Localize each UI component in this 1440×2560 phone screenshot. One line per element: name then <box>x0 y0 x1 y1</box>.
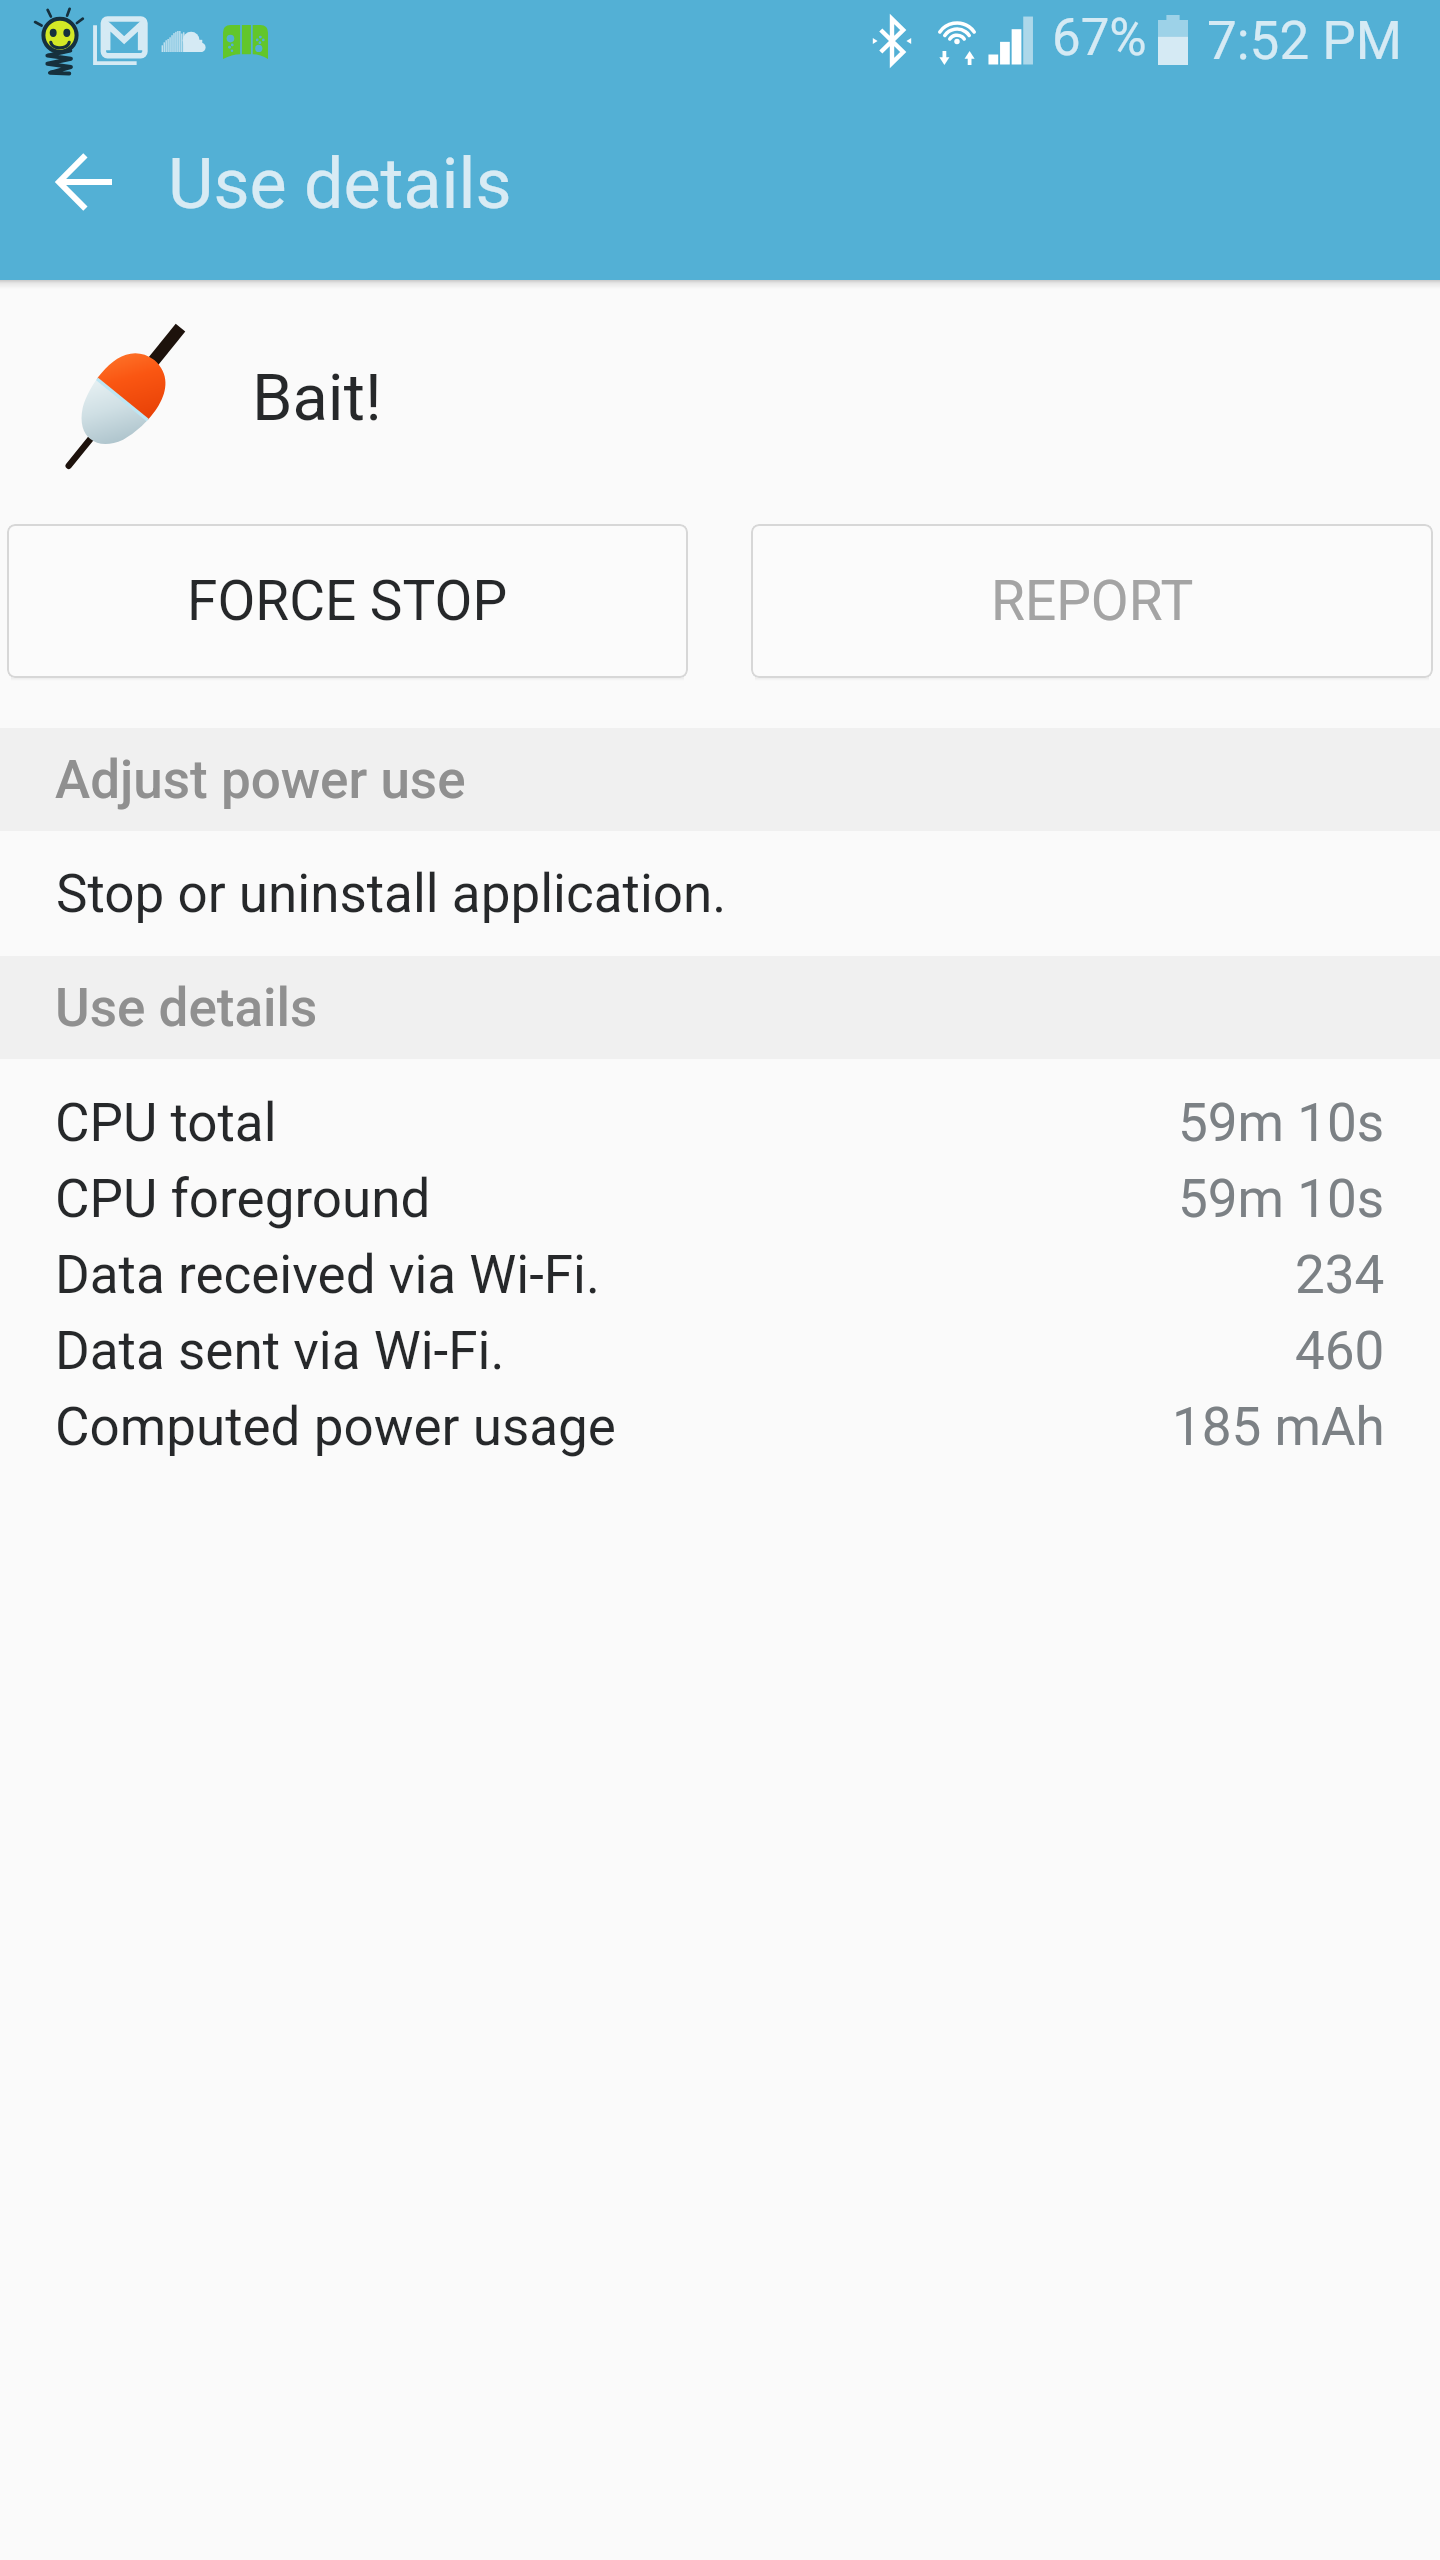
staticText: 7:52 PM <box>1207 10 1403 72</box>
staticText: FORCE STOP <box>187 569 508 633</box>
staticText: REPORT <box>991 569 1194 633</box>
button[interactable]: FORCE STOP <box>7 524 688 678</box>
staticText: Computed power usage <box>55 1396 616 1458</box>
staticText: 59m 10s <box>1178 1092 1385 1154</box>
staticText: 59m 10s <box>1178 1168 1385 1230</box>
staticText: Bait! <box>252 360 382 436</box>
staticText: 185 mAh <box>1172 1396 1385 1458</box>
staticText: 234 <box>1295 1244 1385 1306</box>
staticText: Data sent via Wi-Fi. <box>55 1320 505 1382</box>
staticText: Adjust power use <box>55 749 466 811</box>
button[interactable]: REPORT <box>751 524 1433 678</box>
staticText: CPU foreground <box>55 1168 431 1230</box>
staticText: Use details <box>168 143 512 225</box>
staticText: CPU total <box>55 1092 277 1154</box>
staticText: 460 <box>1295 1320 1385 1382</box>
staticText: Use details <box>55 977 318 1039</box>
button[interactable]: Stop or uninstall application. <box>0 831 1440 956</box>
staticText: Stop or uninstall application. <box>56 863 727 925</box>
staticText: 67% <box>1052 8 1147 68</box>
button[interactable]: Navigate up <box>24 122 144 242</box>
staticText: Data received via Wi-Fi. <box>55 1244 600 1306</box>
